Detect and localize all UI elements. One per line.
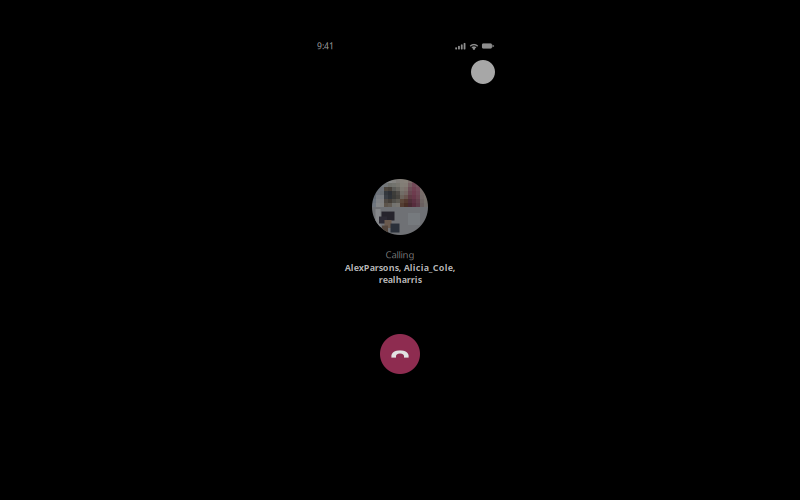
- button[interactable]: End call: [380, 334, 420, 374]
- staticText: 9:41: [317, 40, 334, 52]
- staticText: Calling: [385, 248, 414, 261]
- staticText: AlexParsons, Alicia_Cole, realharris: [344, 261, 455, 286]
- button[interactable]: Camera preview: [471, 60, 495, 84]
